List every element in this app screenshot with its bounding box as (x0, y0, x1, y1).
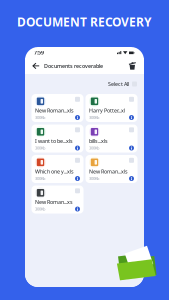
staticText: 300Kb (35, 206, 45, 212)
button[interactable]: Select All (108, 80, 137, 88)
staticText: Harry Potter...xl (89, 107, 125, 114)
staticText: 300Kb (89, 176, 99, 181)
button[interactable]: Which one y...xls (31, 155, 83, 183)
staticText: 7:59 (34, 49, 44, 56)
staticText: 300Kb (89, 115, 99, 120)
button[interactable]: Delete (128, 61, 137, 70)
staticText: I want to be...xls (35, 137, 73, 144)
staticText: New Roman...xls (35, 107, 74, 114)
staticText: New Roman...xs (35, 198, 73, 205)
button[interactable]: New Roman...xls (31, 94, 83, 122)
button[interactable]: bills...xls (85, 124, 137, 152)
staticText: bills...xls (89, 137, 108, 144)
button[interactable]: New Roman...xs (31, 185, 83, 213)
staticText: New Roman...xls (89, 168, 128, 175)
staticText: Select All (108, 80, 129, 88)
staticText: Documents recoverable (44, 62, 103, 70)
button[interactable]: I want to be...xls (31, 124, 83, 152)
staticText: 300Kb (35, 115, 45, 120)
staticText: Which one y...xls (35, 168, 74, 175)
button[interactable]: New Roman...xls (85, 155, 137, 183)
staticText: DOCUMENT RECOVERY (17, 14, 152, 30)
staticText: 300Kb (89, 145, 99, 151)
staticText: 300Kb (35, 145, 45, 151)
button[interactable]: Back (32, 62, 40, 70)
staticText: 300Kb (35, 176, 45, 181)
button[interactable]: Harry Potter...xl (85, 94, 137, 122)
